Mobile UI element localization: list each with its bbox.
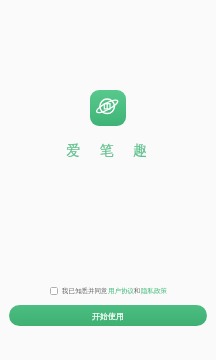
staticText: 隐私政策: [141, 287, 167, 295]
staticText: 和: [134, 287, 141, 295]
staticText: 我已知悉并同意: [62, 287, 108, 295]
staticText: 爱 笔 趣: [66, 140, 151, 159]
button[interactable]: 隐私政策: [141, 287, 167, 295]
button[interactable]: 用户协议: [108, 287, 134, 295]
button[interactable]: 开始使用: [9, 305, 207, 326]
staticText: 开始使用: [92, 311, 124, 321]
button[interactable]: Agree checkbox: [44, 284, 173, 298]
staticText: 用户协议: [108, 287, 134, 295]
other: Agree checkbox: [50, 287, 58, 295]
